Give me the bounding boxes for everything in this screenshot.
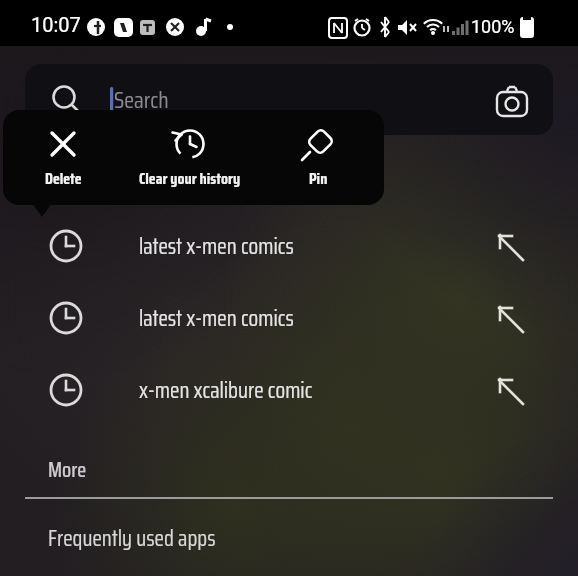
staticText: Delete <box>45 166 82 191</box>
staticText: x-men xcalibure comic <box>139 373 313 408</box>
button[interactable]: latest x-men comics <box>0 288 578 348</box>
button[interactable]: Delete <box>3 110 125 205</box>
button[interactable]: latest x-men comics <box>0 216 578 276</box>
staticText: More <box>48 453 87 486</box>
button[interactable]: x-men xcalibure comic <box>0 360 578 420</box>
staticText: latest x-men comics <box>139 229 294 264</box>
button[interactable]: Clear your history <box>128 110 252 205</box>
staticText: Clear your history <box>139 166 241 191</box>
staticText: latest x-men comics <box>139 301 294 336</box>
staticText: Pin <box>309 166 328 191</box>
staticText: Frequently used apps <box>48 521 216 556</box>
button[interactable]: More <box>36 441 99 498</box>
button[interactable]: Search <box>25 64 553 135</box>
button[interactable]: Pin <box>256 110 380 205</box>
staticText: 10:07 <box>31 13 81 36</box>
staticText: 100% <box>471 16 515 37</box>
staticText: Search <box>114 82 169 118</box>
